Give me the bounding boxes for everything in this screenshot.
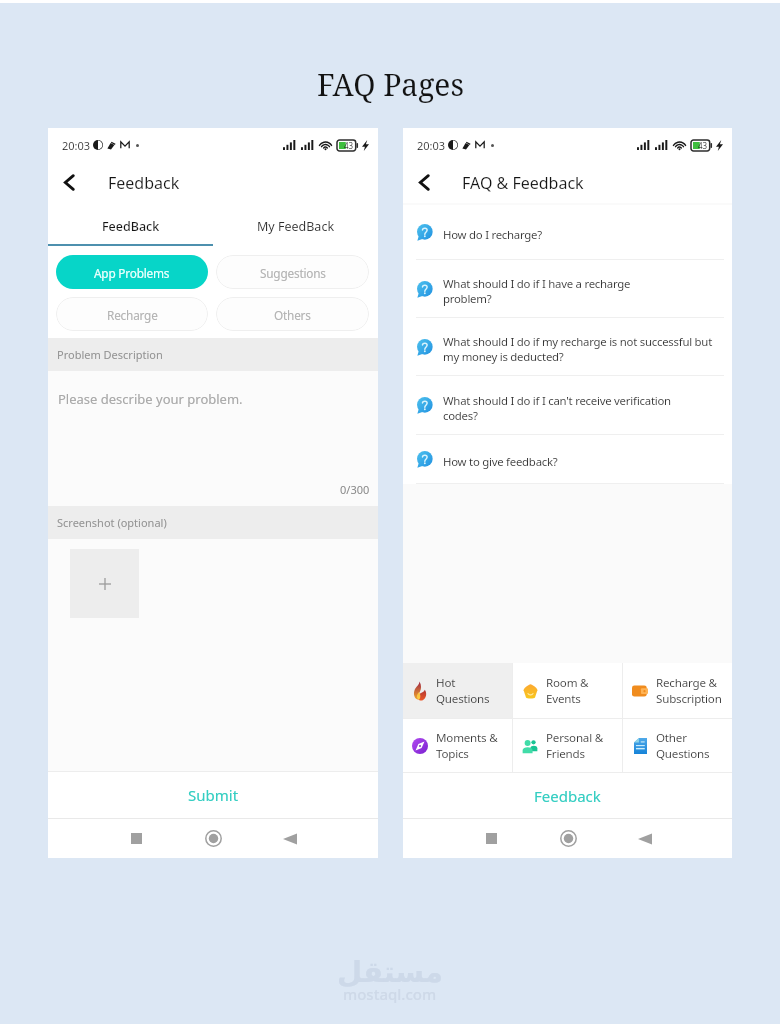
button[interactable]: Suggestions [216,255,369,289]
button[interactable]: Others [216,297,369,331]
button[interactable]: Recent apps [108,819,164,858]
staticText: Room & Events [546,675,589,706]
staticText: App Problems [94,265,170,281]
button[interactable]: How to give feedback? [403,435,732,484]
staticText: Suggestions [260,265,326,281]
button[interactable]: Back [262,819,318,858]
button[interactable]: App Problems [56,255,208,289]
staticText: What should I do if I have a recharge pr… [443,276,631,306]
staticText: My FeedBack [257,218,335,235]
staticText: Recharge [107,307,158,323]
staticText: FAQ Pages [317,64,464,105]
staticText: Hot Questions [436,675,490,706]
staticText: FAQ & Feedback [462,172,584,194]
button[interactable]: Home [185,819,241,858]
staticText: Moments & Topics [436,730,498,761]
staticText: Please describe your problem. [58,390,243,408]
button[interactable]: Back [48,162,91,203]
staticText: 20:03 [417,138,446,153]
staticText: Submit [188,785,239,805]
staticText: Screenshot (optional) [57,515,167,530]
staticText: Problem Description [57,347,163,362]
staticText: What should I do if my recharge is not s… [443,334,713,364]
staticText: FeedBack [102,218,160,235]
button[interactable]: What should I do if I have a recharge pr… [403,260,732,318]
staticText: mostaql.com [343,984,437,1004]
button[interactable]: Other Questions [623,719,732,772]
staticText: Others [274,307,311,323]
button[interactable]: What should I do if I can't receive veri… [403,376,732,435]
staticText: Recharge & Subscription [656,675,722,706]
staticText: Other Questions [656,730,710,761]
button[interactable]: Home [540,819,596,858]
button[interactable]: Recharge [56,297,208,331]
button[interactable]: Recent apps [463,819,519,858]
button[interactable]: Moments & Topics [403,719,512,772]
staticText: Feedback [534,786,601,806]
button[interactable]: Submit [48,772,378,818]
button[interactable]: Back [403,162,446,203]
button[interactable]: Feedback [403,773,732,818]
button[interactable]: FeedBack [48,203,213,246]
button[interactable]: Hot Questions [403,663,512,718]
button[interactable]: How do I recharge? [403,205,732,260]
button[interactable]: My FeedBack [213,203,378,246]
staticText: 43 [344,140,354,151]
staticText: 20:03 [62,138,91,153]
staticText: مستقل [337,955,444,989]
staticText: 43 [698,140,708,151]
staticText: How to give feedback? [443,454,558,470]
staticText: How do I recharge? [443,227,542,243]
button[interactable]: Room & Events [513,663,622,718]
button[interactable]: Recharge & Subscription [623,663,732,718]
button[interactable]: Personal & Friends [513,719,622,772]
button[interactable]: Add screenshot [70,549,139,618]
staticText: What should I do if I can't receive veri… [443,393,671,423]
staticText: Personal & Friends [546,730,604,761]
staticText: 0/300 [340,482,370,497]
button[interactable]: Back [617,819,673,858]
button[interactable]: What should I do if my recharge is not s… [403,318,732,376]
staticText: Feedback [108,172,180,194]
